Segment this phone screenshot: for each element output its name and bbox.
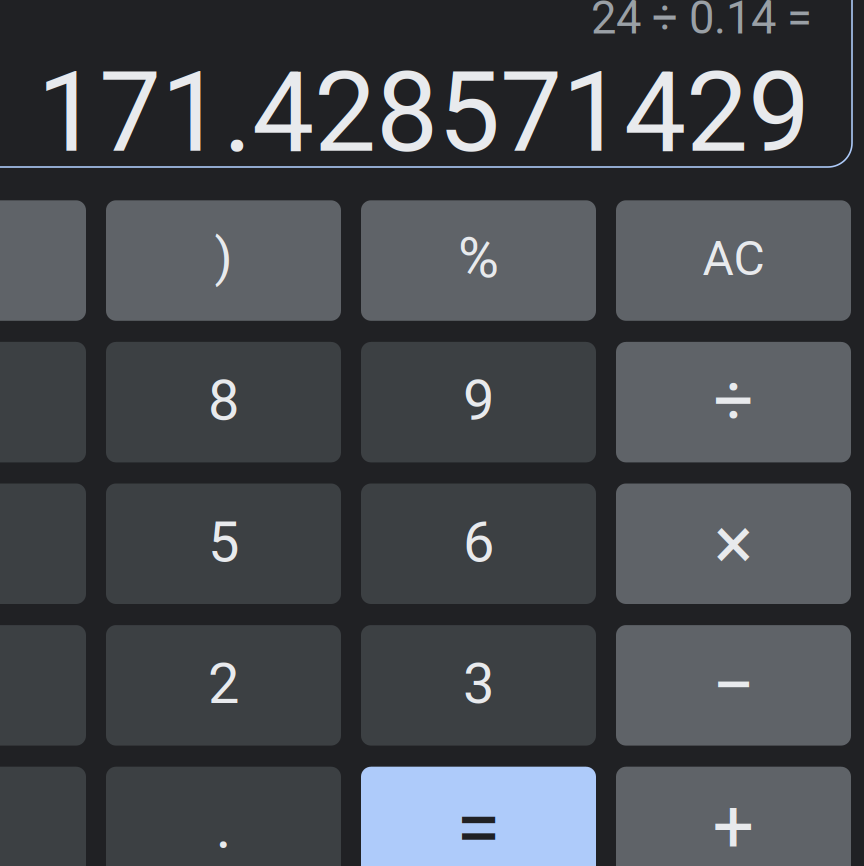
staticText: 24 ÷ 0.14 = — [591, 0, 812, 44]
button[interactable]: Close parenthesis — [106, 200, 341, 321]
button[interactable]: 5 — [106, 483, 341, 604]
staticText: 8 — [208, 368, 239, 433]
staticText: × — [714, 501, 753, 587]
staticText: = — [456, 780, 501, 866]
staticText: 6 — [463, 509, 494, 575]
staticText: 5 — [208, 509, 239, 575]
button[interactable]: 8 — [106, 342, 341, 462]
button[interactable]: Subtract — [616, 625, 851, 746]
button[interactable]: Percent — [361, 200, 596, 321]
staticText: ÷ — [713, 359, 753, 442]
button[interactable]: 9 — [361, 342, 596, 462]
staticText: 171.428571429 — [37, 48, 810, 178]
button[interactable]: All clear — [616, 200, 851, 321]
staticText: . — [215, 790, 231, 862]
button[interactable]: Equals — [361, 767, 596, 866]
staticText: 9 — [463, 368, 494, 433]
staticText: 3 — [463, 651, 494, 717]
button[interactable]: 3 — [361, 625, 596, 746]
button[interactable]: 2 — [106, 625, 341, 746]
staticText: % — [458, 225, 499, 291]
staticText: − — [712, 641, 755, 730]
button[interactable]: Divide — [616, 342, 851, 462]
staticText: ) — [214, 227, 232, 288]
button[interactable]: Add — [616, 767, 851, 866]
staticText: 2 — [208, 651, 239, 717]
button[interactable]: Multiply — [616, 483, 851, 604]
button[interactable]: Open parenthesis — [0, 200, 86, 321]
button[interactable]: 6 — [361, 483, 596, 604]
staticText: + — [712, 784, 754, 866]
staticText: AC — [702, 230, 764, 287]
button[interactable]: Decimal point — [106, 767, 341, 866]
